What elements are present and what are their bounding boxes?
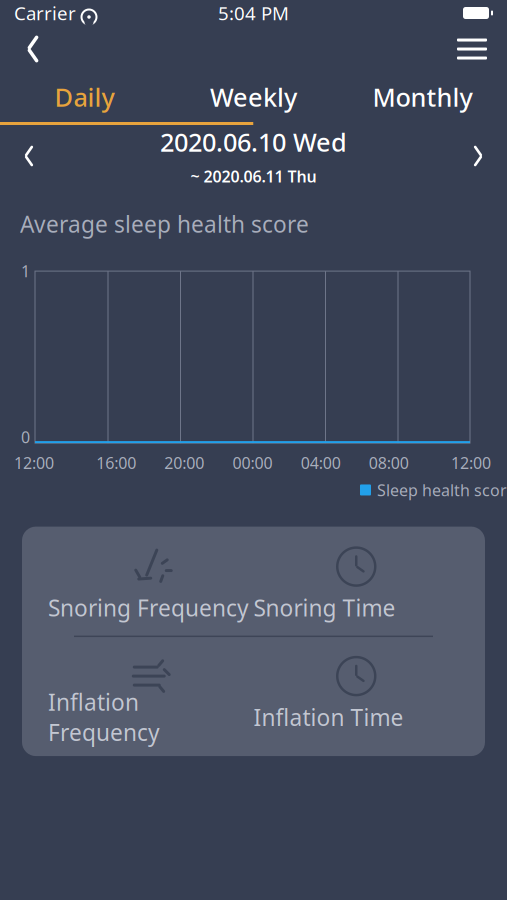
staticText: 5:04 PM <box>218 1 289 25</box>
staticText: Average sleep health score <box>20 209 309 239</box>
staticText: Weekly <box>210 80 297 114</box>
button[interactable]: Back <box>8 26 58 72</box>
button[interactable]: Inflation Frequency <box>48 650 253 732</box>
staticText: 04:00 <box>301 452 341 473</box>
staticText: 12:00 <box>14 452 54 473</box>
staticText: 1 <box>21 260 30 282</box>
staticText: Sleep health scor <box>377 479 507 500</box>
button[interactable]: Menu <box>445 26 499 72</box>
staticText: Carrier <box>14 1 76 25</box>
staticText: 08:00 <box>369 452 409 473</box>
button[interactable]: Previous day <box>0 129 58 183</box>
button[interactable]: Next day <box>449 129 507 183</box>
button[interactable]: Snoring Time <box>253 541 459 623</box>
button[interactable]: Weekly <box>169 72 338 122</box>
staticText: ~ 2020.06.11 Thu <box>190 166 316 187</box>
staticText: 0 <box>21 426 30 448</box>
staticText: Inflation Frequency <box>48 687 160 747</box>
staticText: Daily <box>54 80 114 114</box>
button[interactable]: Daily <box>0 72 169 122</box>
staticText: Snoring Time <box>253 592 395 623</box>
staticText: 12:00 <box>451 452 491 473</box>
staticText: 00:00 <box>232 452 272 473</box>
staticText: 16:00 <box>96 452 136 473</box>
staticText: 2020.06.10 Wed <box>160 125 347 159</box>
button[interactable]: Monthly <box>338 72 507 122</box>
staticText: 20:00 <box>164 452 204 473</box>
staticText: Inflation Time <box>253 702 403 732</box>
staticText: Snoring Frequency <box>48 592 249 623</box>
button[interactable]: Inflation Time <box>253 650 459 732</box>
staticText: Monthly <box>372 80 472 114</box>
button[interactable]: Snoring Frequency <box>48 541 253 623</box>
